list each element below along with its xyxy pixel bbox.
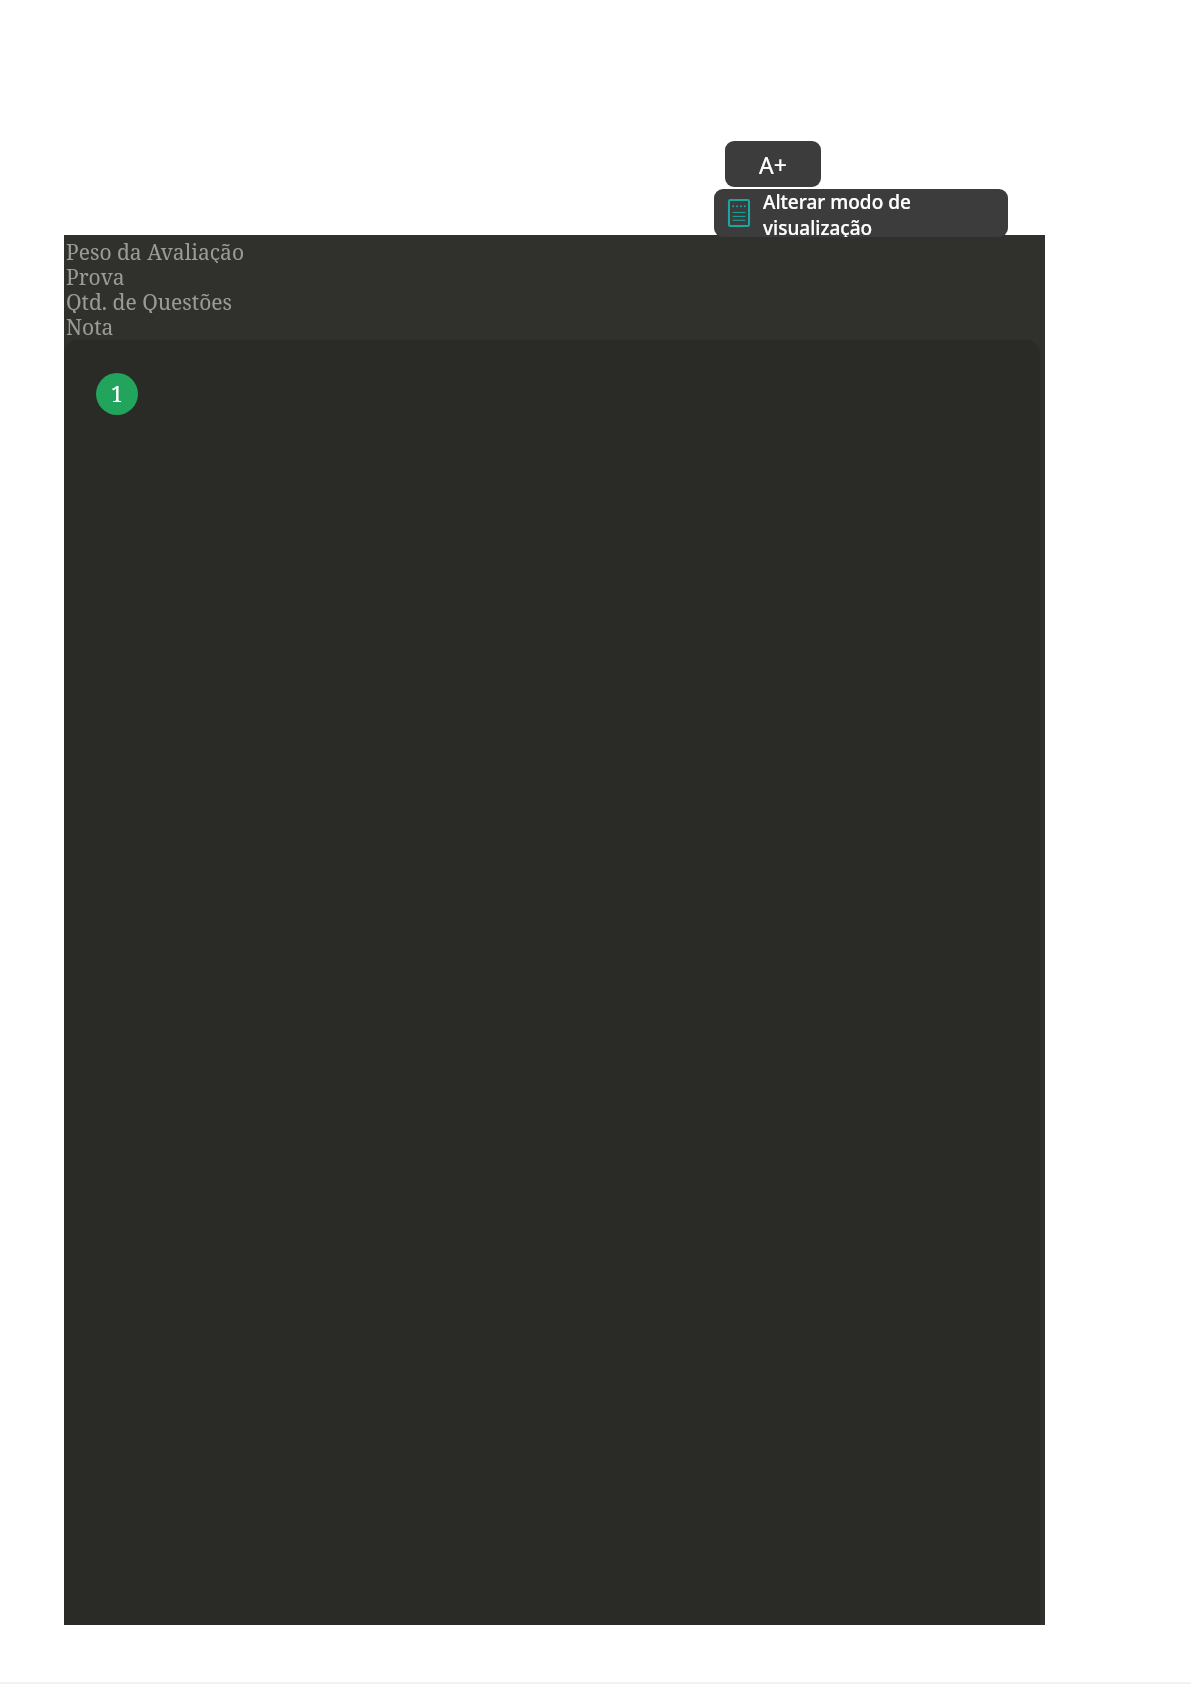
button[interactable]: Peso da Avaliação: [66, 238, 1045, 263]
button[interactable]: Prova: [66, 263, 1045, 288]
staticText: 1: [111, 380, 123, 409]
staticText: Peso da Avaliação: [66, 238, 244, 263]
button[interactable]: A+: [725, 141, 821, 187]
staticText: Alterar modo de visualização: [763, 189, 1008, 237]
button[interactable]: Nota: [66, 313, 1045, 338]
staticText: Qtd. de Questões: [66, 288, 233, 313]
staticText: A+: [759, 149, 787, 180]
button[interactable]: Qtd. de Questões: [66, 288, 1045, 313]
staticText: Prova: [66, 263, 125, 288]
button[interactable]: 1: [96, 373, 138, 415]
button[interactable]: Alterar modo de visualização: [714, 189, 1008, 237]
staticText: Nota: [66, 313, 114, 338]
